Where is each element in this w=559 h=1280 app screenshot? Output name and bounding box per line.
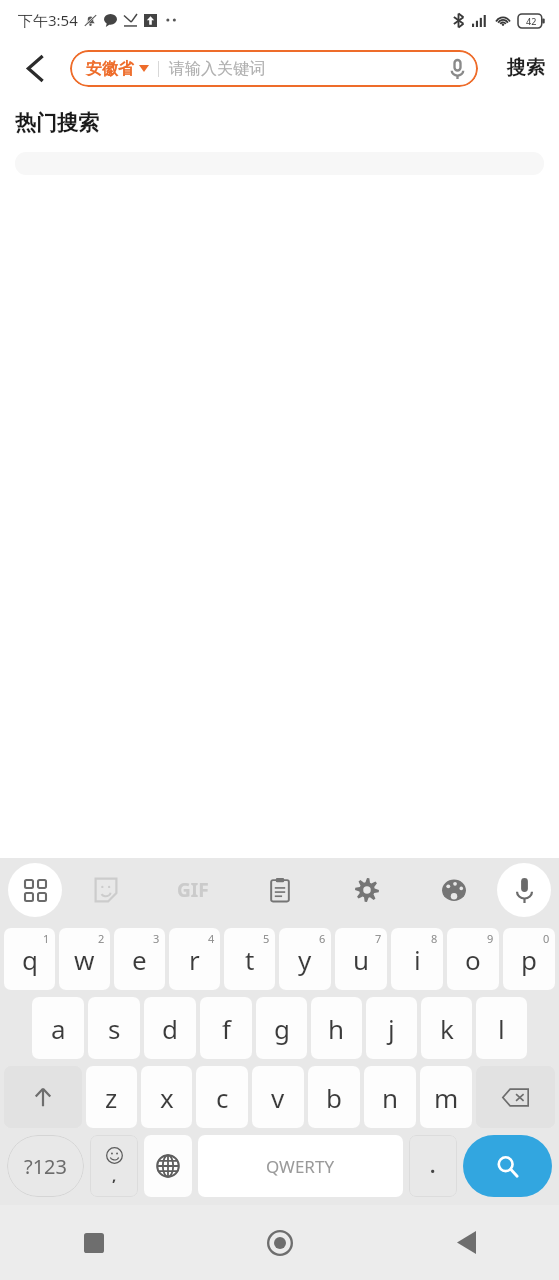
button[interactable]: x: [141, 1066, 192, 1128]
button[interactable]: m: [420, 1066, 472, 1128]
button[interactable]: Voice input: [440, 52, 474, 86]
button[interactable]: i: [391, 928, 443, 990]
button[interactable]: n: [364, 1066, 416, 1128]
button[interactable]: 安徽省: [70, 50, 478, 87]
staticText: d: [162, 1011, 178, 1046]
staticText: w: [74, 942, 95, 977]
staticText: ?123: [24, 1153, 67, 1180]
button[interactable]: e: [114, 928, 165, 990]
button[interactable]: o: [447, 928, 499, 990]
staticText: g: [274, 1011, 290, 1046]
staticText: 2: [98, 931, 105, 946]
button[interactable]: 搜索: [493, 40, 559, 96]
staticText: y: [298, 942, 312, 977]
button[interactable]: c: [196, 1066, 248, 1128]
button[interactable]: l: [476, 997, 527, 1059]
button[interactable]: Shift: [4, 1066, 82, 1128]
staticText: f: [222, 1011, 231, 1046]
staticText: 请输入关键词: [169, 59, 265, 79]
staticText: s: [108, 1011, 121, 1046]
button[interactable]: Search: [463, 1135, 552, 1197]
button[interactable]: t: [224, 928, 275, 990]
button[interactable]: Keyboard menu: [8, 863, 62, 917]
staticText: 0: [543, 931, 550, 946]
button[interactable]: ?123: [7, 1135, 84, 1197]
button[interactable]: y: [279, 928, 331, 990]
staticText: .: [430, 1153, 436, 1179]
button[interactable]: j: [366, 997, 417, 1059]
button[interactable]: g: [256, 997, 307, 1059]
staticText: z: [105, 1080, 118, 1115]
button[interactable]: Back: [10, 43, 60, 93]
staticText: h: [328, 1011, 345, 1046]
button[interactable]: f: [200, 997, 252, 1059]
button[interactable]: b: [308, 1066, 360, 1128]
button[interactable]: a: [32, 997, 84, 1059]
button[interactable]: z: [86, 1066, 137, 1128]
button[interactable]: k: [421, 997, 472, 1059]
button[interactable]: h: [311, 997, 362, 1059]
staticText: 3: [153, 931, 160, 946]
button[interactable]: Back: [373, 1205, 559, 1280]
button[interactable]: Voice typing: [497, 863, 551, 917]
button[interactable]: QWERTY: [198, 1135, 403, 1197]
button[interactable]: Stickers: [62, 858, 149, 922]
staticText: ,: [112, 1165, 117, 1185]
staticText: 4: [208, 931, 215, 946]
button[interactable]: q: [4, 928, 55, 990]
staticText: q: [22, 942, 38, 977]
button[interactable]: w: [59, 928, 110, 990]
staticText: p: [521, 942, 537, 977]
staticText: u: [353, 942, 370, 977]
button[interactable]: GIF: [149, 858, 236, 922]
staticText: j: [388, 1011, 395, 1046]
staticText: t: [245, 942, 255, 977]
staticText: r: [189, 942, 200, 977]
staticText: 42: [526, 15, 537, 27]
staticText: 热门搜索: [15, 110, 99, 136]
staticText: c: [216, 1080, 229, 1115]
staticText: m: [434, 1080, 459, 1115]
button[interactable]: Emoji: [90, 1135, 138, 1197]
staticText: GIF: [177, 877, 209, 903]
staticText: b: [326, 1080, 342, 1115]
staticText: 9: [487, 931, 494, 946]
button[interactable]: u: [335, 928, 387, 990]
staticText: k: [440, 1011, 454, 1046]
button[interactable]: p: [503, 928, 555, 990]
staticText: 6: [319, 931, 326, 946]
button[interactable]: Change language: [144, 1135, 192, 1197]
button[interactable]: .: [409, 1135, 457, 1197]
staticText: 7: [375, 931, 382, 946]
staticText: 搜索: [507, 56, 545, 80]
staticText: a: [51, 1011, 66, 1046]
staticText: e: [132, 942, 147, 977]
staticText: v: [271, 1080, 285, 1115]
button[interactable]: Clipboard: [236, 858, 323, 922]
button[interactable]: Home: [187, 1205, 373, 1280]
button[interactable]: Theme: [410, 858, 497, 922]
button[interactable]: r: [169, 928, 220, 990]
button[interactable]: v: [252, 1066, 304, 1128]
staticText: i: [414, 942, 421, 977]
staticText: 8: [431, 931, 438, 946]
staticText: 安徽省: [86, 59, 134, 79]
button[interactable]: Recent apps: [0, 1205, 187, 1280]
staticText: l: [498, 1011, 505, 1046]
staticText: QWERTY: [266, 1155, 335, 1178]
staticText: 5: [263, 931, 270, 946]
button[interactable]: d: [144, 997, 196, 1059]
staticText: 1: [43, 931, 50, 946]
button[interactable]: s: [88, 997, 140, 1059]
staticText: o: [465, 942, 481, 977]
staticText: x: [160, 1080, 174, 1115]
staticText: n: [382, 1080, 399, 1115]
button[interactable]: Settings: [323, 858, 410, 922]
staticText: 下午3:54: [18, 10, 78, 30]
button[interactable]: Backspace: [476, 1066, 555, 1128]
